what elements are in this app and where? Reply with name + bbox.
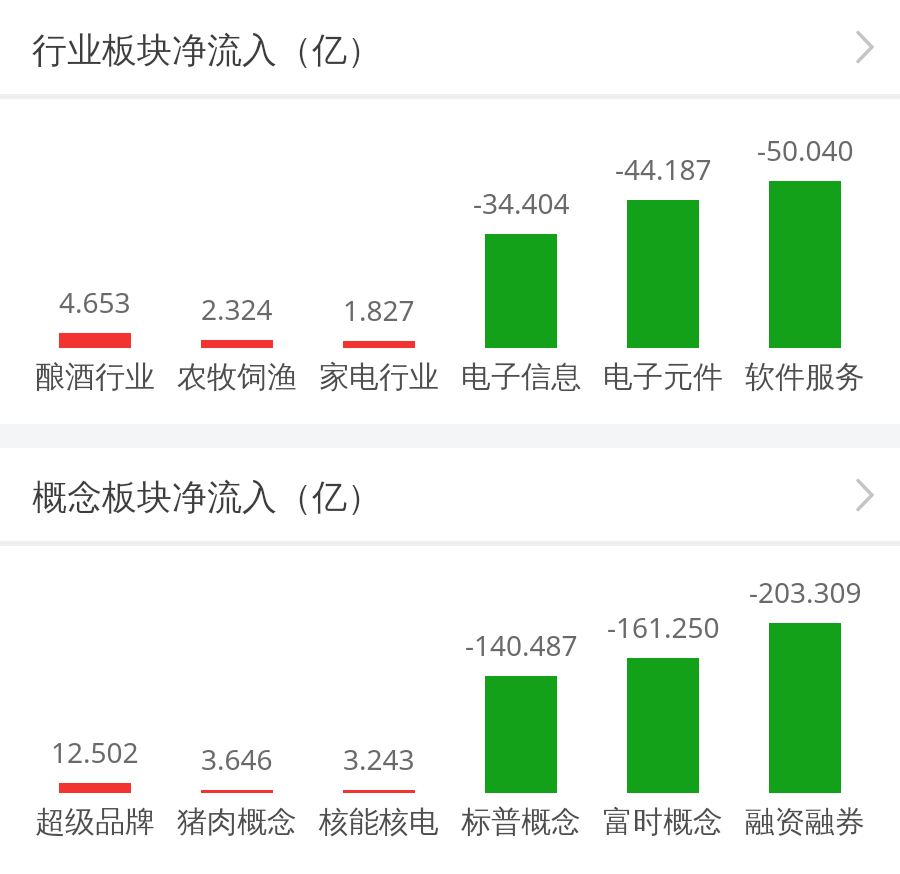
staticText: 12.502 <box>51 733 139 771</box>
staticText: 电子元件 <box>603 358 723 396</box>
staticText: 软件服务 <box>745 358 865 396</box>
button[interactable]: 2.324 <box>166 290 308 396</box>
button[interactable]: -140.487 <box>450 626 592 841</box>
staticText: -140.487 <box>465 626 578 664</box>
staticText: 3.646 <box>201 740 273 778</box>
staticText: 概念板块净流入（亿） <box>32 475 382 519</box>
staticText: 农牧饲渔 <box>177 358 297 396</box>
staticText: 3.243 <box>343 740 415 778</box>
staticText: -50.040 <box>757 131 854 169</box>
staticText: -44.187 <box>615 150 712 188</box>
staticText: 行业板块净流入（亿） <box>32 28 382 72</box>
button[interactable]: 行业板块净流入（亿） <box>0 0 900 94</box>
staticText: 猪肉概念 <box>177 803 297 841</box>
staticText: 标普概念 <box>461 803 581 841</box>
button[interactable]: 概念板块净流入（亿） <box>0 448 900 541</box>
button[interactable]: -34.404 <box>450 184 592 396</box>
staticText: 超级品牌 <box>35 803 155 841</box>
button[interactable]: 4.653 <box>24 283 166 396</box>
button[interactable]: 3.646 <box>166 740 308 841</box>
button[interactable]: 1.827 <box>308 291 450 396</box>
button[interactable]: -203.309 <box>734 573 876 841</box>
staticText: 电子信息 <box>461 358 581 396</box>
staticText: 家电行业 <box>319 358 439 396</box>
staticText: -161.250 <box>607 608 720 646</box>
button[interactable]: -44.187 <box>592 150 734 396</box>
button[interactable]: 12.502 <box>24 733 166 841</box>
staticText: -203.309 <box>749 573 862 611</box>
button[interactable]: -50.040 <box>734 131 876 396</box>
staticText: 2.324 <box>201 290 273 328</box>
staticText: 核能核电 <box>319 803 439 841</box>
staticText: 融资融券 <box>745 803 865 841</box>
staticText: 富时概念 <box>603 803 723 841</box>
button[interactable]: -161.250 <box>592 608 734 841</box>
staticText: 酿酒行业 <box>35 358 155 396</box>
staticText: 1.827 <box>343 291 415 329</box>
staticText: -34.404 <box>473 184 570 222</box>
button[interactable]: 3.243 <box>308 740 450 841</box>
staticText: 4.653 <box>59 283 131 321</box>
